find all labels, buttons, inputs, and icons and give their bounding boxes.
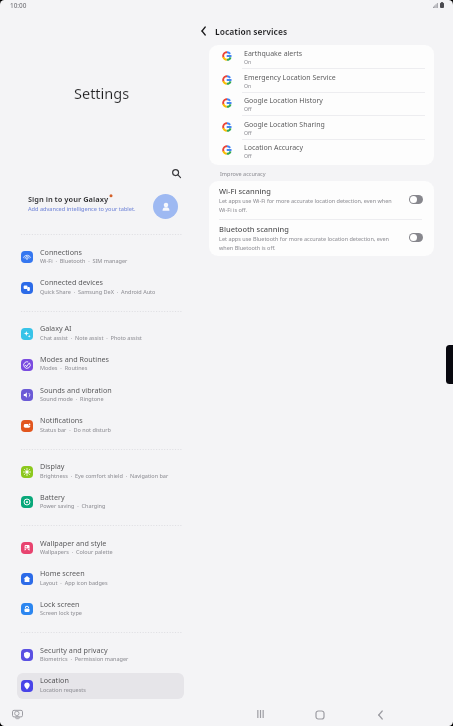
staticText: Settings (74, 83, 130, 103)
staticText: 10:00 (10, 1, 27, 10)
staticText: Wi-Fi scanning (219, 186, 271, 196)
staticText: Chat assist · Note assist · Photo assist (40, 334, 142, 341)
button[interactable]: DeX mode (9, 706, 25, 722)
staticText: Off (244, 152, 252, 159)
staticText: Screen lock type (40, 609, 82, 616)
staticText: Home screen (40, 568, 85, 578)
staticText: Location (40, 675, 69, 685)
staticText: Power saving · Charging (40, 502, 106, 509)
button[interactable] (17, 321, 184, 347)
button[interactable] (209, 115, 432, 139)
staticText: Notifications (40, 415, 83, 425)
staticText: Wallpapers · Colour palette (40, 548, 113, 555)
button[interactable]: Sign in to your Galaxy (17, 192, 185, 221)
staticText: Location Accuracy (244, 143, 304, 153)
button[interactable]: Home (306, 701, 334, 726)
button[interactable] (209, 139, 432, 163)
button[interactable] (17, 413, 184, 439)
button[interactable] (17, 489, 184, 515)
button[interactable] (209, 224, 432, 257)
button[interactable] (209, 45, 432, 69)
staticText: Layout · App icon badges (40, 579, 108, 586)
button[interactable] (17, 535, 184, 561)
staticText: Modes · Routines (40, 364, 88, 371)
button[interactable]: Back (366, 701, 394, 726)
staticText: Improve accuracy (220, 170, 266, 177)
button[interactable] (17, 382, 184, 408)
button[interactable] (17, 459, 184, 485)
staticText: Lock screen (40, 599, 80, 609)
staticText: Sign in to your Galaxy (28, 194, 109, 204)
staticText: Biometrics · Permission manager (40, 655, 129, 662)
button[interactable] (209, 92, 432, 116)
staticText: Location services (215, 26, 288, 37)
staticText: Connected devices (40, 277, 103, 287)
staticText: Location requests (40, 686, 86, 693)
staticText: Sound mode · Ringtone (40, 395, 104, 402)
staticText: Let apps use Bluetooth for more accurate… (219, 235, 394, 251)
button[interactable]: Recents (246, 700, 274, 726)
button[interactable] (209, 68, 432, 92)
button[interactable] (17, 275, 184, 301)
staticText: Earthquake alerts (244, 49, 303, 59)
button[interactable] (17, 597, 184, 623)
button[interactable] (17, 566, 184, 592)
button[interactable] (17, 642, 184, 668)
staticText: On (244, 58, 252, 65)
staticText: Status bar · Do not disturb (40, 426, 111, 433)
staticText: Battery (40, 492, 65, 502)
staticText: Wi-Fi · Bluetooth · SIM manager (40, 257, 128, 264)
staticText: Google Location Sharing (244, 120, 325, 130)
button[interactable] (17, 352, 184, 378)
button[interactable]: Search (166, 163, 186, 183)
button[interactable]: Back (194, 21, 213, 40)
staticText: Google Location History (244, 96, 323, 106)
staticText: Brightness · Eye comfort shield · Naviga… (40, 472, 169, 479)
staticText: Sounds and vibration (40, 385, 112, 395)
staticText: Off (244, 129, 252, 136)
staticText: Galaxy AI (40, 323, 72, 333)
staticText: Display (40, 461, 65, 471)
staticText: Add advanced intelligence to your tablet… (28, 205, 136, 213)
staticText: Emergency Location Service (244, 73, 336, 83)
button[interactable]: Edge panel (446, 345, 453, 384)
staticText: Wallpaper and style (40, 538, 107, 548)
staticText: Bluetooth scanning (219, 224, 289, 234)
staticText: Off (244, 105, 252, 112)
button[interactable] (17, 673, 184, 699)
button[interactable] (17, 245, 184, 271)
staticText: Let apps use Wi-Fi for more accurate loc… (219, 197, 394, 213)
button[interactable]: Account (153, 194, 178, 219)
staticText: Security and privacy (40, 645, 108, 655)
staticText: Modes and Routines (40, 354, 110, 364)
button[interactable] (209, 186, 432, 219)
staticText: On (244, 82, 252, 89)
staticText: Connections (40, 247, 82, 257)
staticText: Quick Share · Samsung DeX · Android Auto (40, 288, 156, 295)
